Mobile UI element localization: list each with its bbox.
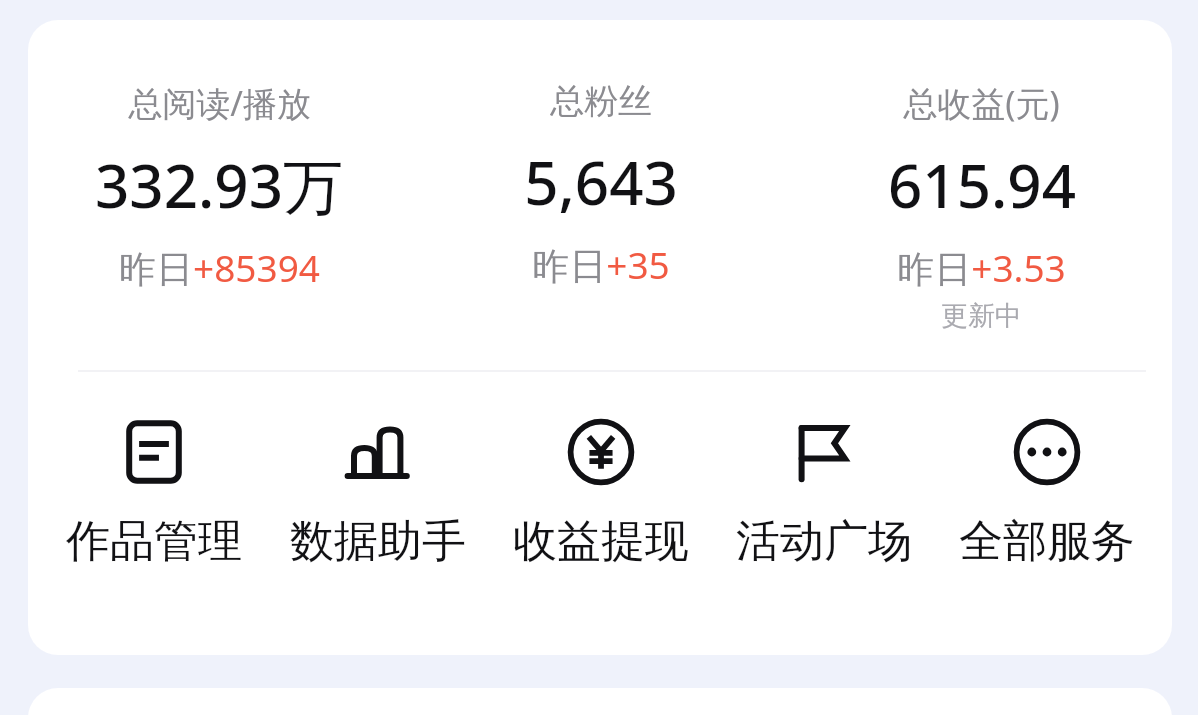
staticText: 作品管理 xyxy=(66,514,242,569)
staticText: 332.93万 xyxy=(95,144,343,226)
staticText: 全部服务 xyxy=(959,514,1135,569)
other: 活动广场 xyxy=(784,412,864,492)
other: 收益提现 xyxy=(561,412,641,492)
staticText: 活动广场 xyxy=(736,514,912,569)
staticText: 615.94 xyxy=(888,144,1076,226)
button[interactable]: 总阅读/播放 xyxy=(28,20,410,293)
other: 数据助手 xyxy=(338,412,418,492)
button[interactable]: 活动广场 xyxy=(712,412,935,569)
staticText: 昨日+3.53 xyxy=(897,242,1066,293)
staticText: 总收益(元) xyxy=(903,80,1060,126)
staticText: 数据助手 xyxy=(290,514,466,569)
other: 作品管理 xyxy=(114,412,194,492)
button[interactable]: 总粉丝 xyxy=(410,20,791,290)
staticText: 昨日+85394 xyxy=(119,242,320,293)
button[interactable]: 总收益(元) xyxy=(791,20,1172,333)
button[interactable]: 数据助手 xyxy=(266,412,489,569)
staticText: 更新中 xyxy=(941,299,1022,333)
staticText: 5,643 xyxy=(524,141,678,223)
staticText: 总粉丝 xyxy=(550,80,652,123)
staticText: 昨日+35 xyxy=(532,239,670,290)
button[interactable]: 全部服务 xyxy=(935,412,1158,569)
staticText: 总阅读/播放 xyxy=(128,80,311,126)
staticText: 收益提现 xyxy=(513,514,689,569)
button[interactable]: 作品管理 xyxy=(42,412,266,569)
button[interactable]: 收益提现 xyxy=(489,412,712,569)
other: 全部服务 xyxy=(1007,412,1087,492)
